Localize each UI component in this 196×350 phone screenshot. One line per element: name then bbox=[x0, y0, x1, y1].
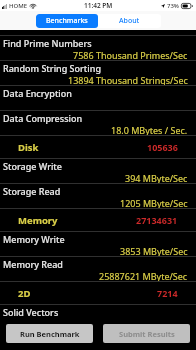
staticText: Solid Vectors bbox=[3, 306, 59, 318]
button[interactable]: Memory Read bbox=[0, 256, 196, 281]
staticText: Memory Write bbox=[3, 233, 65, 245]
staticText: HOME bbox=[9, 2, 28, 10]
staticText: 11:42 PM bbox=[84, 1, 113, 10]
staticText: 13894 Thousand Strings/Sec bbox=[68, 74, 188, 85]
staticText: Storage Read bbox=[3, 185, 61, 197]
staticText: 105636 bbox=[147, 141, 178, 153]
staticText: 27134631 bbox=[136, 214, 178, 226]
button[interactable]: Data Encryption bbox=[0, 85, 196, 110]
staticText: 7586 Thousand Primes/Sec bbox=[73, 49, 188, 60]
button[interactable]: Submit Results bbox=[103, 324, 190, 343]
staticText: 2D bbox=[18, 287, 31, 300]
staticText: Disk bbox=[18, 141, 39, 154]
staticText: 394 MByte/Sec bbox=[125, 172, 188, 183]
staticText: Benchmarks bbox=[46, 16, 88, 26]
staticText: 7214 bbox=[157, 287, 178, 299]
staticText: Run Benchmark bbox=[20, 329, 80, 339]
button[interactable]: 2D bbox=[0, 281, 196, 304]
staticText: 18.0 MBytes / Sec. bbox=[111, 124, 188, 135]
button[interactable]: About bbox=[98, 14, 161, 28]
button[interactable]: Memory bbox=[0, 208, 196, 231]
button[interactable]: Storage Write bbox=[0, 158, 196, 183]
button[interactable]: Random String Sorting bbox=[0, 60, 196, 85]
staticText: 25887621 MByte/Sec bbox=[99, 270, 188, 281]
button[interactable]: Solid Vectors bbox=[0, 304, 196, 329]
button[interactable]: Run Benchmark bbox=[6, 324, 93, 343]
staticText: Memory Read bbox=[3, 258, 63, 270]
staticText: Find Prime Numbers bbox=[3, 37, 92, 49]
staticText: 3002 MOps/Sec bbox=[122, 18, 188, 30]
button[interactable]: Find Prime Numbers bbox=[0, 35, 196, 60]
button[interactable]: Data Compression bbox=[0, 110, 196, 135]
staticText: About bbox=[119, 16, 140, 26]
button[interactable]: Memory Write bbox=[0, 231, 196, 256]
button[interactable]: Storage Read bbox=[0, 183, 196, 208]
button[interactable]: Benchmarks bbox=[36, 14, 98, 28]
staticText: 73% bbox=[167, 2, 179, 10]
staticText: Random String Sorting bbox=[3, 62, 101, 74]
staticText: Data Encryption bbox=[3, 87, 72, 99]
staticText: 3853 MByte/Sec bbox=[120, 245, 188, 256]
staticText: 1205 MByte/Sec bbox=[120, 197, 188, 208]
staticText: Storage Write bbox=[3, 160, 62, 172]
staticText: Data Compression bbox=[3, 112, 83, 124]
staticText: Memory bbox=[18, 214, 58, 227]
button[interactable]: Disk bbox=[0, 135, 196, 158]
staticText: Submit Results bbox=[119, 329, 175, 339]
